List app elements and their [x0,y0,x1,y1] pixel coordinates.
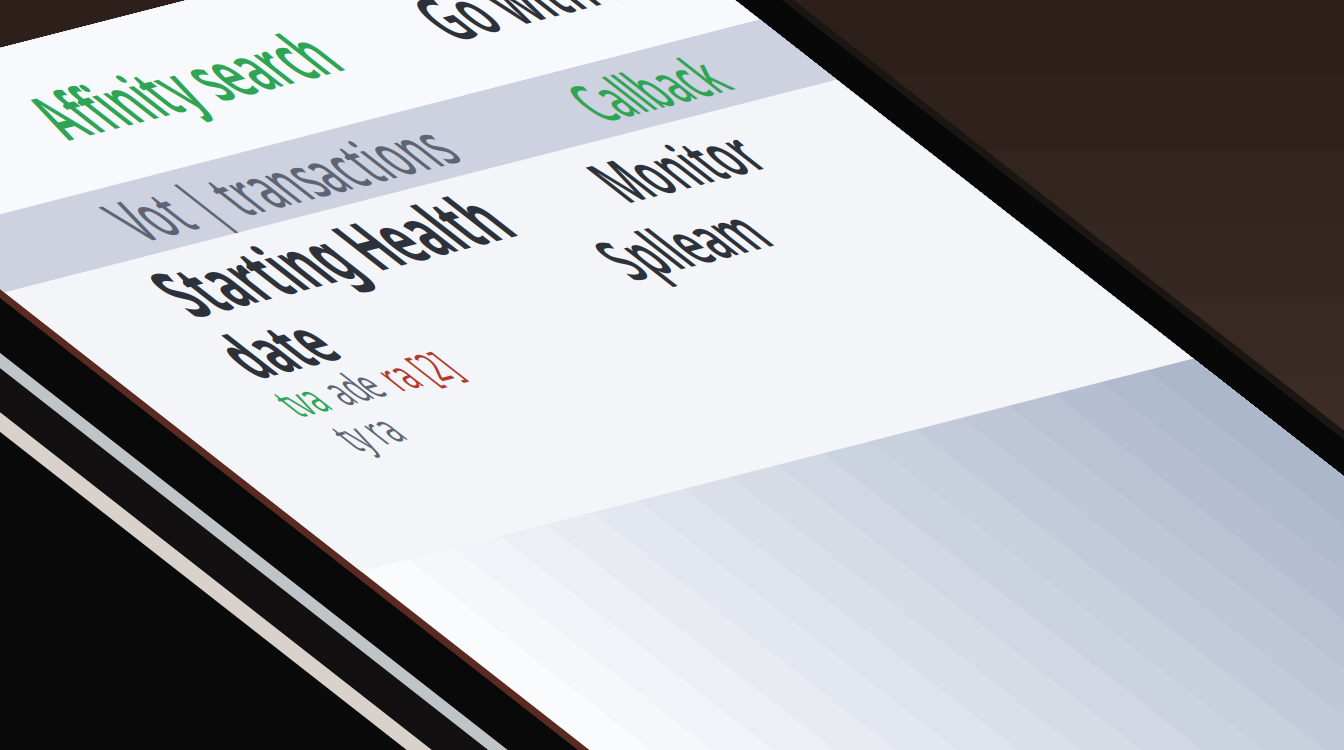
staticText: Starting Health [56,64,210,90]
staticText: Callback [290,44,353,65]
staticText: ade [70,105,91,121]
staticText: date [50,86,92,110]
staticText: ra [2] [96,105,126,121]
staticText: Vot | transactions [72,43,224,66]
staticText: tva [48,105,65,121]
staticText: ty ra [53,118,78,134]
staticText: Monitor [262,65,331,88]
button[interactable]: Go with me [274,10,379,34]
staticText: Affinity search [92,10,224,34]
staticText: Splleam [229,86,297,109]
button[interactable]: Callback [290,44,353,65]
button[interactable]: Affinity search [92,10,224,34]
staticText: Go with me [274,10,379,34]
